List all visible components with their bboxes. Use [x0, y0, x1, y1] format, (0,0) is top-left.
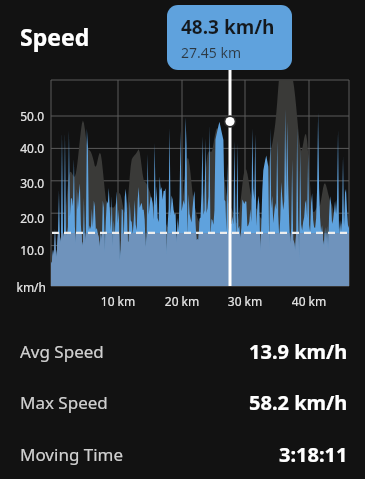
- staticText: 27.45 km: [181, 43, 241, 62]
- button[interactable]: Max Speed: [0, 388, 365, 416]
- staticText: 10 km: [92, 293, 144, 309]
- staticText: km/h: [0, 279, 46, 295]
- staticText: 58.2 km/h: [249, 389, 348, 416]
- staticText: 13.9 km/h: [249, 338, 348, 365]
- button[interactable]: Avg Speed: [0, 337, 365, 365]
- staticText: Moving Time: [20, 443, 124, 466]
- button[interactable]: 48.3 km/h: [167, 5, 292, 70]
- button[interactable]: Moving Time: [0, 440, 365, 468]
- staticText: Avg Speed: [20, 340, 104, 363]
- staticText: 3:18:11: [279, 441, 348, 468]
- staticText: 40 km: [283, 293, 335, 309]
- other: Speed chart: [0, 0, 365, 479]
- staticText: Speed: [20, 21, 90, 52]
- staticText: 30 km: [219, 293, 271, 309]
- staticText: 40.0: [0, 140, 44, 156]
- staticText: 30.0: [0, 175, 44, 191]
- staticText: 10.0: [0, 242, 44, 258]
- staticText: 50.0: [0, 108, 44, 124]
- staticText: 48.3 km/h: [181, 14, 275, 40]
- staticText: Max Speed: [20, 391, 108, 414]
- staticText: 20 km: [156, 293, 208, 309]
- staticText: 20.0: [0, 210, 44, 226]
